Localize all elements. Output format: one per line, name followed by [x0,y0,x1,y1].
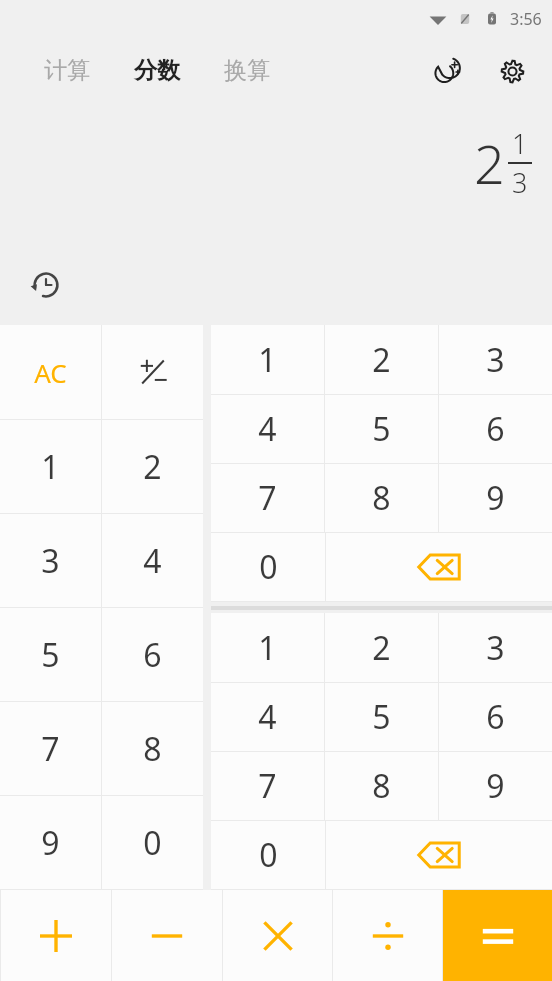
button[interactable]: 2 [325,613,438,682]
button[interactable]: 0 [211,533,325,601]
staticText: AC [34,355,67,390]
staticText: 7 [258,764,277,808]
staticText: 8 [372,764,391,808]
button[interactable]: 9 [439,464,552,532]
button[interactable]: 0 [211,821,325,889]
staticText: 5 [372,407,391,451]
button[interactable]: 2 [102,420,203,513]
staticText: 3 [486,626,505,670]
staticText: 7 [41,727,60,771]
button[interactable]: Backspace [326,821,552,889]
button[interactable]: 6 [102,608,203,701]
button[interactable]: Backspace [326,533,552,601]
button[interactable]: 5 [325,395,438,463]
staticText: 8 [372,476,391,520]
button[interactable]: subtract [112,890,222,981]
button[interactable]: 3 [0,514,101,607]
staticText: 1 [512,125,528,162]
button[interactable]: 1 [211,613,324,682]
staticText: 8 [143,727,162,771]
button[interactable]: 2 [325,325,438,394]
button[interactable]: 3 [439,613,552,682]
button[interactable]: 0 [102,796,203,889]
staticText: 7 [258,476,277,520]
button[interactable]: 换算 [222,50,272,91]
button[interactable]: 4 [211,395,324,463]
button[interactable]: 8 [102,702,203,795]
staticText: 9 [486,476,505,520]
staticText: 2 [372,626,391,670]
button[interactable]: Night mode [424,49,468,93]
button[interactable]: 5 [325,683,438,751]
staticText: 1 [258,338,277,382]
button[interactable]: 4 [102,514,203,607]
button[interactable]: 6 [439,395,552,463]
button[interactable]: 7 [211,464,324,532]
button[interactable]: 7 [211,752,324,820]
staticText: 5 [372,695,391,739]
staticText: 9 [486,764,505,808]
staticText: 1 [258,626,277,670]
staticText: 6 [143,633,162,677]
button[interactable]: 8 [325,752,438,820]
button[interactable]: divide [333,890,442,981]
button[interactable]: History [24,263,68,307]
button[interactable]: add [1,890,111,981]
button[interactable]: 9 [439,752,552,820]
staticText: 2 [474,126,505,200]
staticText: 6 [486,407,505,451]
staticText: 0 [259,545,278,589]
button[interactable]: 分数 [132,50,182,91]
button[interactable]: AC [0,325,101,419]
button[interactable]: 6 [439,683,552,751]
button[interactable]: Plus minus [102,325,203,419]
staticText: 3 [512,164,528,201]
staticText: 3 [41,539,60,583]
button[interactable]: 7 [0,702,101,795]
staticText: 3 [486,338,505,382]
staticText: 0 [259,833,278,877]
button[interactable]: 3 [439,325,552,394]
button[interactable]: 5 [0,608,101,701]
staticText: 5 [41,633,60,677]
button[interactable]: multiply [223,890,332,981]
staticText: 4 [258,695,277,739]
button[interactable]: equals [443,890,552,981]
staticText: 0 [143,821,162,865]
button[interactable]: 计算 [42,50,92,91]
button[interactable]: 1 [0,420,101,513]
staticText: 3:56 [510,8,542,30]
staticText: 6 [486,695,505,739]
button[interactable]: 9 [0,796,101,889]
staticText: 4 [258,407,277,451]
button[interactable]: 1 [211,325,324,394]
staticText: 分数 [134,56,180,85]
staticText: 4 [143,539,162,583]
staticText: 2 [372,338,391,382]
button[interactable]: 8 [325,464,438,532]
staticText: 1 [41,445,60,489]
staticText: 9 [41,821,60,865]
staticText: 计算 [44,56,90,85]
button[interactable]: Settings [490,49,534,93]
button[interactable]: 4 [211,683,324,751]
staticText: 2 [143,445,162,489]
staticText: 换算 [224,56,270,85]
